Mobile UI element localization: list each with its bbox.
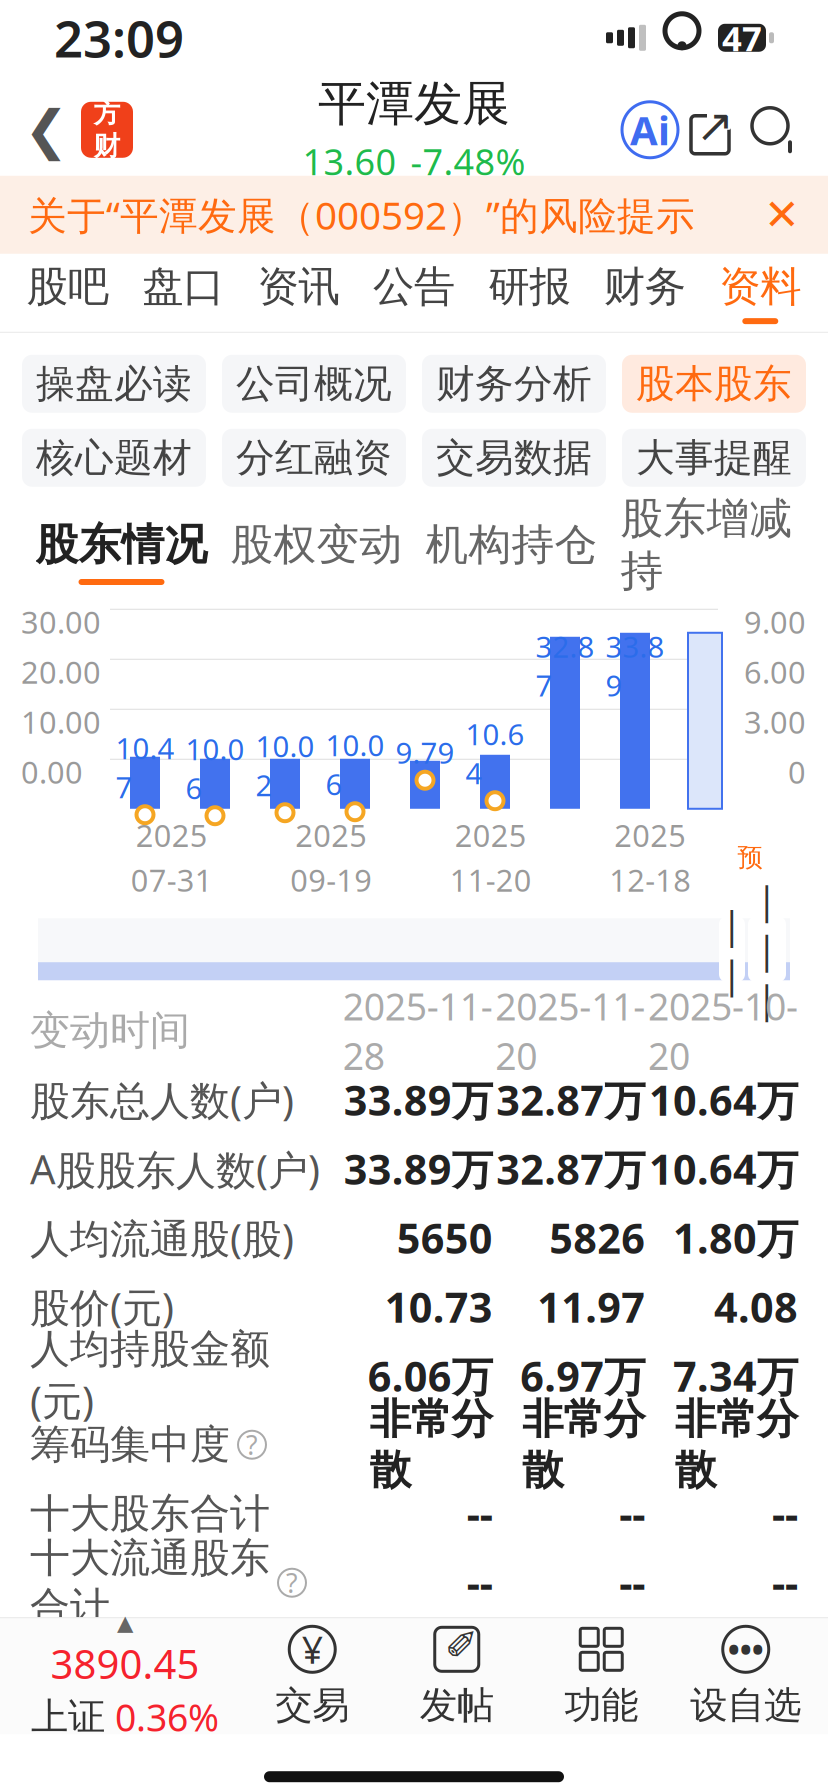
staticText: -- bbox=[467, 1486, 493, 1541]
button[interactable]: 分享 bbox=[678, 98, 742, 162]
staticText: -7.48% bbox=[410, 137, 525, 185]
staticText: ✐ bbox=[445, 1623, 479, 1668]
staticText: ✕ bbox=[764, 191, 800, 239]
staticText: 财富 bbox=[93, 130, 120, 195]
staticText: 0.00 bbox=[21, 751, 83, 792]
button[interactable]: 资料 bbox=[703, 254, 818, 332]
staticText: 交易数据 bbox=[436, 434, 592, 481]
staticText: 5650 bbox=[397, 1210, 493, 1265]
staticText: 13.60 bbox=[302, 137, 396, 185]
staticText: 股东情况 bbox=[35, 519, 207, 571]
button[interactable]: 财务 bbox=[587, 254, 702, 332]
button[interactable]: 搜索 bbox=[742, 98, 806, 162]
button[interactable]: ¥ bbox=[240, 1618, 384, 1734]
button[interactable]: 时间范围滑块 bbox=[719, 916, 786, 982]
staticText: -- bbox=[619, 1486, 645, 1541]
staticText: 机构持仓 bbox=[425, 519, 597, 571]
button[interactable]: 资讯 bbox=[241, 254, 356, 332]
staticText: -- bbox=[467, 1555, 493, 1610]
button[interactable]: ••• bbox=[673, 1618, 818, 1734]
button[interactable]: 股东情况 bbox=[24, 515, 219, 589]
button[interactable]: 财务分析 bbox=[422, 355, 606, 413]
staticText: 30.00 bbox=[21, 601, 101, 642]
staticText: 2025 bbox=[136, 815, 208, 855]
staticText: ••• bbox=[728, 1628, 764, 1670]
button[interactable]: 机构持仓 bbox=[414, 515, 609, 589]
staticText: 非常分散 bbox=[370, 1394, 493, 1495]
staticText: 预 bbox=[737, 842, 762, 873]
staticText: || bbox=[721, 900, 742, 999]
button[interactable]: ✐ bbox=[384, 1618, 529, 1734]
staticText: 0 bbox=[788, 751, 806, 792]
button[interactable]: 股吧 bbox=[10, 254, 125, 332]
staticText: 筹码集中度 bbox=[30, 1420, 230, 1469]
staticText: 平潭发展 bbox=[318, 74, 510, 133]
staticText: 33.89万 bbox=[344, 1141, 493, 1196]
staticText: 上证 bbox=[31, 1694, 105, 1740]
button[interactable]: 功能 bbox=[529, 1618, 673, 1734]
staticText: ? bbox=[246, 1427, 258, 1462]
staticText: 东方 bbox=[93, 64, 120, 130]
button[interactable]: 分红融资 bbox=[222, 429, 406, 487]
staticText: 23:09 bbox=[54, 4, 184, 71]
staticText: 非常分散 bbox=[675, 1394, 798, 1495]
staticText: 10.73 bbox=[385, 1279, 493, 1334]
staticText: ¥ bbox=[302, 1624, 323, 1674]
staticText: 10.64万 bbox=[649, 1072, 798, 1127]
button[interactable]: 公告 bbox=[356, 254, 472, 332]
staticText: 10.00 bbox=[21, 701, 101, 742]
button[interactable]: 股本股东 bbox=[622, 355, 806, 413]
staticText: 功能 bbox=[564, 1682, 638, 1728]
staticText: 大事提醒 bbox=[636, 434, 792, 481]
staticText: 公司概况 bbox=[236, 360, 392, 407]
staticText: 4.08 bbox=[714, 1279, 798, 1334]
button[interactable]: 股权变动 bbox=[219, 515, 414, 589]
staticText: 操盘必读 bbox=[36, 360, 192, 407]
button[interactable]: 交易数据 bbox=[422, 429, 606, 487]
staticText: -- bbox=[772, 1486, 798, 1541]
button[interactable]: ▲ bbox=[10, 1611, 240, 1742]
staticText: 3890.45 bbox=[50, 1637, 199, 1690]
staticText: 2025 bbox=[295, 815, 367, 855]
button[interactable]: AI 助手 bbox=[622, 102, 678, 158]
staticText: ? bbox=[286, 1565, 298, 1600]
button[interactable]: 返回 东方财富 bbox=[0, 84, 157, 176]
staticText: -- bbox=[772, 1555, 798, 1610]
staticText: 3.00 bbox=[744, 701, 806, 742]
staticText: 股本股东 bbox=[636, 360, 792, 407]
staticText: 1.80万 bbox=[673, 1210, 798, 1265]
staticText: 股吧 bbox=[27, 261, 109, 312]
staticText: 7.34万 bbox=[673, 1348, 798, 1403]
staticText: 12-18 bbox=[609, 859, 691, 900]
staticText: 2025-11-20 bbox=[495, 981, 645, 1080]
button[interactable]: 核心题材 bbox=[22, 429, 206, 487]
staticText: 9.00 bbox=[744, 601, 806, 642]
button[interactable]: 股东增减持 bbox=[609, 515, 804, 589]
staticText: 20.00 bbox=[21, 651, 101, 692]
button[interactable]: 操盘必读 bbox=[22, 355, 206, 413]
staticText: 十大股东合计 bbox=[30, 1489, 270, 1538]
staticText: 6.00 bbox=[744, 651, 806, 692]
staticText: 交易 bbox=[275, 1682, 349, 1728]
staticText: 10.47 bbox=[115, 728, 174, 806]
staticText: 2025-11-28 bbox=[343, 981, 493, 1080]
staticText: 2025-10-20 bbox=[648, 981, 798, 1080]
staticText: 核心题材 bbox=[36, 434, 192, 481]
staticText: ❮ bbox=[24, 99, 69, 160]
button[interactable]: 关于“平潭发展（000592）”的风险提示 bbox=[0, 176, 828, 254]
button[interactable]: 公司概况 bbox=[222, 355, 406, 413]
button[interactable]: 盘口 bbox=[125, 254, 241, 332]
staticText: 07-31 bbox=[131, 859, 213, 900]
button[interactable]: 研报 bbox=[472, 254, 587, 332]
staticText: 09-19 bbox=[290, 859, 372, 900]
staticText: 人均持股金额(元) bbox=[30, 1325, 270, 1427]
staticText: 十大流通股东合计 bbox=[30, 1534, 270, 1632]
staticText: 变动时间 bbox=[30, 1006, 190, 1055]
staticText: 47 bbox=[722, 15, 762, 61]
staticText: 人均流通股(股) bbox=[30, 1211, 294, 1264]
button[interactable]: 大事提醒 bbox=[622, 429, 806, 487]
staticText: 9.79 bbox=[395, 733, 454, 772]
staticText: 10.64 bbox=[465, 714, 524, 792]
staticText: 11-20 bbox=[450, 859, 532, 900]
staticText: 财务分析 bbox=[436, 360, 592, 407]
